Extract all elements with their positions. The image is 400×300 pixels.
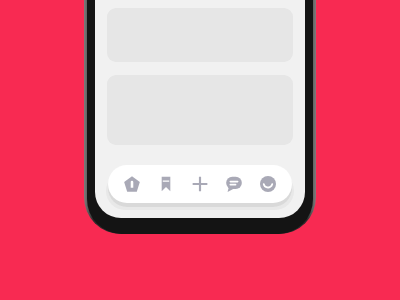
button[interactable]: Home [115, 167, 149, 201]
button[interactable]: Messages [217, 167, 251, 201]
button[interactable]: Profile [251, 167, 285, 201]
button[interactable]: Add [183, 167, 217, 201]
button[interactable]: Bookmarks [149, 167, 183, 201]
